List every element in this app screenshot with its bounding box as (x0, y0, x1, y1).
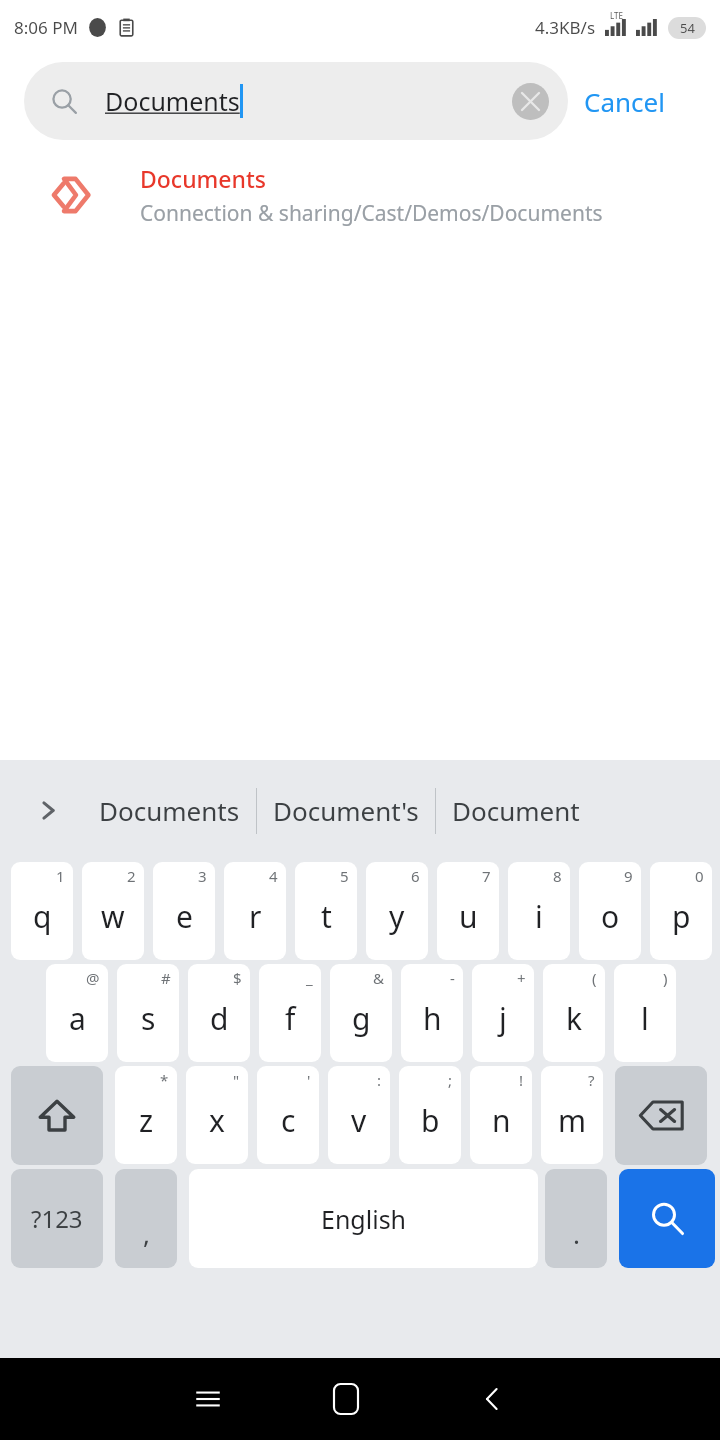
button[interactable]: Document's (267, 783, 425, 838)
staticText: # (161, 968, 171, 988)
button[interactable]: Documents (0, 148, 720, 242)
button[interactable]: 8 (508, 862, 570, 960)
button[interactable]: _ (259, 964, 321, 1062)
staticText: e (176, 896, 193, 937)
staticText: q (33, 896, 52, 937)
staticText: j (499, 998, 507, 1039)
staticText: ) (663, 968, 668, 988)
staticText: : (377, 1070, 382, 1090)
button[interactable]: More suggestions (30, 792, 67, 829)
button[interactable]: 5 (295, 862, 357, 960)
button[interactable]: # (117, 964, 179, 1062)
staticText: t (321, 896, 332, 937)
staticText: , (143, 1216, 150, 1251)
staticText: LTE (610, 10, 623, 21)
staticText: u (459, 896, 478, 937)
staticText: English (321, 1202, 407, 1236)
staticText: r (249, 896, 262, 937)
button[interactable]: " (186, 1066, 248, 1164)
staticText: 4 (269, 866, 278, 886)
staticText: c (281, 1100, 296, 1141)
button[interactable]: Documents (93, 783, 246, 838)
button[interactable]: 7 (437, 862, 499, 960)
staticText: * (160, 1070, 169, 1090)
staticText: $ (233, 968, 242, 988)
staticText: 1 (56, 866, 65, 886)
button[interactable]: 0 (650, 862, 712, 960)
button[interactable]: Home (268, 1358, 423, 1440)
button[interactable]: $ (188, 964, 250, 1062)
staticText: f (285, 998, 296, 1039)
staticText: 7 (482, 866, 491, 886)
button[interactable]: 6 (366, 862, 428, 960)
button[interactable]: - (401, 964, 463, 1062)
button[interactable]: Document (446, 783, 586, 838)
button[interactable]: + (472, 964, 534, 1062)
button[interactable]: 4 (224, 862, 286, 960)
button[interactable]: Search (24, 62, 568, 140)
staticText: . (573, 1216, 580, 1251)
staticText: ( (592, 968, 597, 988)
button[interactable]: Recent apps (148, 1358, 268, 1440)
staticText: 0 (695, 866, 704, 886)
button[interactable]: ( (543, 964, 605, 1062)
button[interactable]: 2 (82, 862, 144, 960)
button[interactable]: ? (541, 1066, 603, 1164)
staticText: ! (519, 1070, 524, 1090)
button[interactable]: Shift (11, 1066, 103, 1165)
staticText: p (672, 896, 691, 937)
staticText: k (566, 998, 583, 1039)
staticText: b (421, 1100, 440, 1141)
button[interactable]: : (328, 1066, 390, 1164)
staticText: Documents (99, 793, 240, 828)
staticText: Documents (105, 84, 240, 118)
staticText: 3 (198, 866, 207, 886)
staticText: + (517, 968, 526, 988)
button[interactable]: ; (399, 1066, 461, 1164)
button[interactable]: ! (470, 1066, 532, 1164)
staticText: w (101, 896, 125, 937)
button[interactable]: . (545, 1169, 607, 1268)
button[interactable]: Cancel (578, 74, 671, 129)
staticText: Cancel (584, 84, 665, 119)
staticText: o (601, 896, 620, 937)
button[interactable]: @ (46, 964, 108, 1062)
button[interactable]: 3 (153, 862, 215, 960)
staticText: - (450, 968, 455, 988)
staticText: g (352, 998, 371, 1039)
staticText: 5 (340, 866, 349, 886)
button[interactable]: ?123 (11, 1169, 103, 1268)
staticText: i (535, 896, 543, 937)
button[interactable]: Backspace (615, 1066, 707, 1165)
button[interactable]: 9 (579, 862, 641, 960)
staticText: Connection & sharing/Cast/Demos/Document… (140, 199, 603, 228)
staticText: " (233, 1070, 240, 1090)
button[interactable]: Search (619, 1169, 715, 1268)
staticText: ? (588, 1070, 595, 1090)
button[interactable]: Clear text (512, 83, 549, 120)
staticText: Documents (140, 163, 266, 194)
staticText: m (558, 1100, 587, 1141)
staticText: 9 (624, 866, 633, 886)
staticText: 8 (553, 866, 562, 886)
staticText: ?123 (31, 1202, 83, 1235)
button[interactable]: , (115, 1169, 177, 1268)
staticText: 54 (680, 19, 695, 37)
button[interactable]: English (189, 1169, 538, 1268)
staticText: Document's (273, 793, 419, 828)
button[interactable]: Back (423, 1358, 563, 1440)
button[interactable]: ' (257, 1066, 319, 1164)
staticText: d (210, 998, 229, 1039)
button[interactable]: & (330, 964, 392, 1062)
staticText: 8:06 PM (14, 16, 78, 39)
staticText: l (641, 998, 649, 1039)
staticText: y (389, 896, 405, 937)
staticText: 6 (411, 866, 420, 886)
staticText: ' (307, 1070, 311, 1090)
button[interactable]: * (115, 1066, 177, 1164)
button[interactable]: ) (614, 964, 676, 1062)
staticText: _ (306, 968, 313, 988)
staticText: ; (448, 1070, 453, 1090)
staticText: x (209, 1100, 225, 1141)
button[interactable]: 1 (11, 862, 73, 960)
